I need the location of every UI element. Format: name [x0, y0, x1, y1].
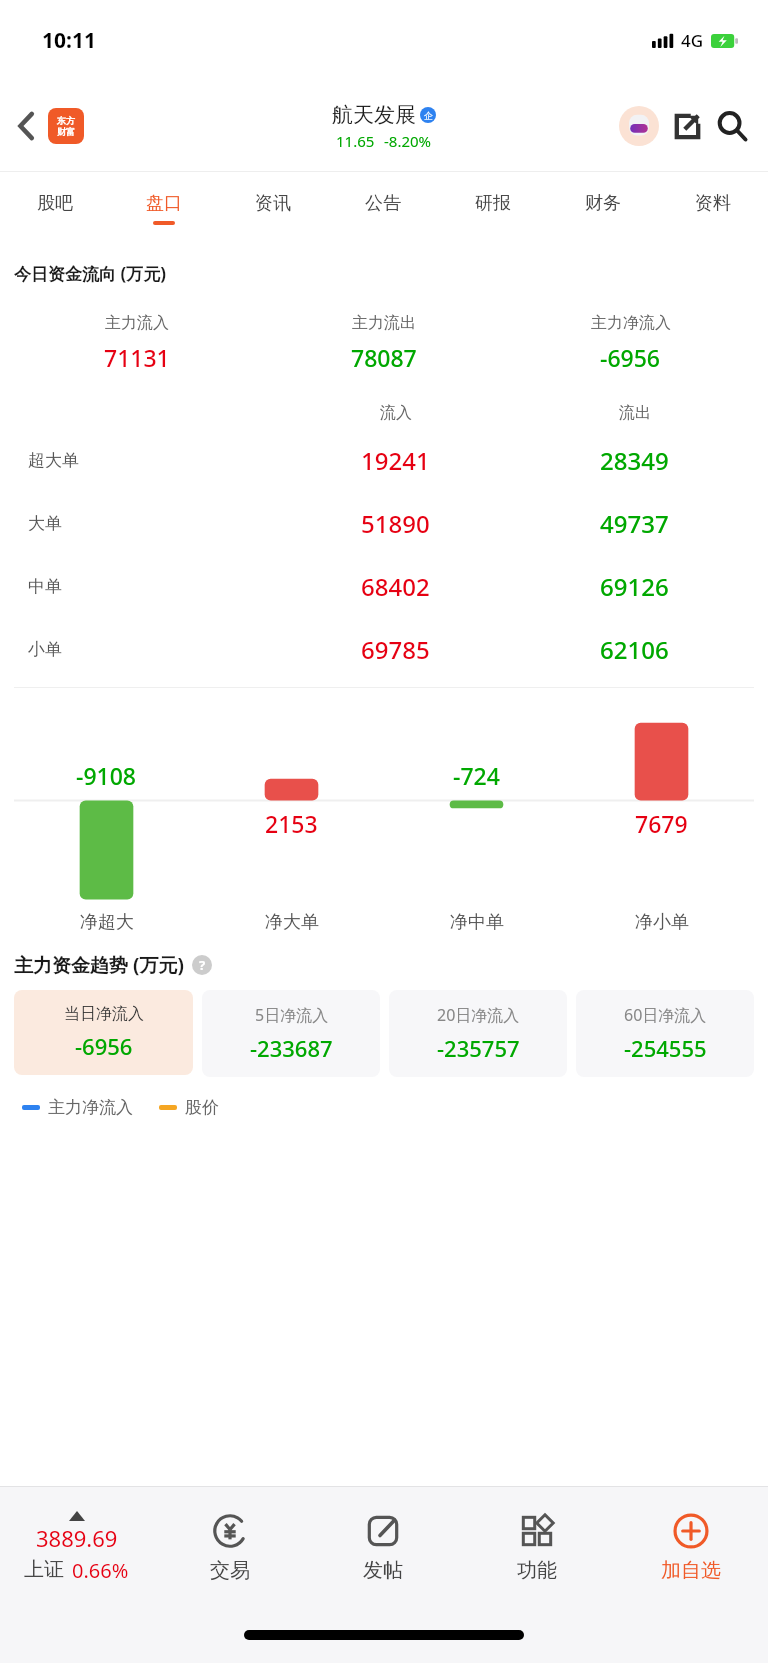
button[interactable]: 财务 [548, 172, 658, 244]
staticText: 盘口 [146, 192, 182, 215]
staticText: 小单 [28, 639, 62, 660]
button[interactable]: 20日净流入 [389, 990, 567, 1077]
staticText: 10:11 [42, 26, 96, 55]
staticText: 4G [681, 29, 704, 52]
button[interactable]: 盘口 [109, 172, 218, 244]
button[interactable]: 小单 [14, 618, 754, 681]
staticText: 超大单 [28, 450, 79, 471]
staticText: 69785 [361, 633, 430, 666]
staticText: 当日净流入 [64, 1004, 144, 1024]
staticText: 功能 [517, 1558, 557, 1583]
staticText: 东方 [57, 115, 75, 126]
button[interactable]: 功能 [460, 1512, 614, 1583]
staticText: 2153 [265, 808, 318, 839]
staticText: 企 [424, 110, 433, 121]
button[interactable]: Search [712, 106, 752, 146]
staticText: 主力流出 [352, 313, 416, 333]
staticText: 7679 [635, 808, 688, 839]
staticText: 60日净流入 [624, 1004, 707, 1026]
staticText: 11.65 [336, 131, 375, 151]
button[interactable]: 资料 [658, 172, 768, 244]
staticText: 中单 [28, 576, 62, 597]
staticText: 0.66% [72, 1557, 129, 1584]
staticText: 股吧 [37, 192, 73, 215]
staticText: 加自选 [661, 1558, 721, 1583]
staticText: -724 [453, 760, 500, 791]
staticText: -235757 [437, 1033, 520, 1063]
button[interactable]: 3889.69 [0, 1511, 153, 1584]
staticText: 大单 [28, 513, 62, 534]
staticText: 流出 [619, 403, 651, 423]
staticText: 68402 [361, 570, 430, 603]
button[interactable]: 超大单 [14, 429, 754, 492]
button[interactable]: 资讯 [218, 172, 328, 244]
staticText: 净大单 [265, 911, 319, 934]
staticText: 62106 [600, 633, 669, 666]
staticText: 资料 [695, 192, 731, 215]
staticText: 上证 [24, 1557, 64, 1582]
staticText: ? [199, 956, 206, 974]
staticText: 主力净流入 [48, 1097, 133, 1118]
staticText: 78087 [351, 342, 417, 373]
staticText: 28349 [600, 444, 669, 477]
button[interactable]: 当日净流入 [14, 990, 193, 1075]
staticText: -6956 [600, 342, 661, 373]
staticText: 49737 [600, 507, 669, 540]
staticText: 净中单 [450, 911, 504, 934]
staticText: 财务 [585, 192, 621, 215]
staticText: 主力流入 [105, 313, 169, 333]
button[interactable]: 5日净流入 [202, 990, 380, 1077]
staticText: 交易 [210, 1558, 250, 1583]
button[interactable]: 大单 [14, 492, 754, 555]
staticText: 公告 [365, 192, 401, 215]
button[interactable]: 加自选 [614, 1512, 768, 1583]
button[interactable]: Help [192, 955, 212, 975]
staticText: 主力净流入 [591, 313, 671, 333]
staticText: 5日净流入 [255, 1004, 329, 1026]
button[interactable]: Share [668, 107, 706, 145]
button[interactable]: AI assistant [618, 105, 660, 147]
staticText: 主力资金趋势 (万元) [14, 952, 184, 978]
staticText: 19241 [361, 444, 430, 477]
button[interactable]: 中单 [14, 555, 754, 618]
staticText: -233687 [250, 1033, 333, 1063]
staticText: -8.20% [384, 131, 432, 151]
button[interactable]: 发帖 [306, 1512, 460, 1583]
staticText: 今日资金流向 (万元) [14, 262, 166, 285]
button[interactable]: 公告 [328, 172, 438, 244]
staticText: 股价 [185, 1097, 219, 1118]
button[interactable]: Back [10, 102, 90, 150]
staticText: 流入 [380, 403, 412, 423]
staticText: 资讯 [255, 192, 291, 215]
staticText: -9108 [76, 760, 137, 791]
button[interactable]: 研报 [438, 172, 548, 244]
button[interactable]: 主力流入 [14, 297, 754, 389]
staticText: 净超大 [80, 911, 134, 934]
staticText: 财富 [57, 126, 75, 137]
staticText: 69126 [600, 570, 669, 603]
staticText: 3889.69 [36, 1523, 118, 1553]
button[interactable]: 60日净流入 [576, 990, 754, 1077]
staticText: 发帖 [363, 1558, 403, 1583]
staticText: 净小单 [635, 911, 689, 934]
staticText: 20日净流入 [437, 1004, 520, 1026]
button[interactable]: 交易 [153, 1512, 306, 1583]
staticText: 51890 [361, 507, 430, 540]
button[interactable]: 股吧 [0, 172, 109, 244]
staticText: -254555 [624, 1033, 707, 1063]
staticText: 研报 [475, 192, 511, 215]
staticText: 航天发展 [332, 102, 416, 128]
staticText: 71131 [104, 342, 170, 373]
staticText: -6956 [75, 1031, 133, 1061]
